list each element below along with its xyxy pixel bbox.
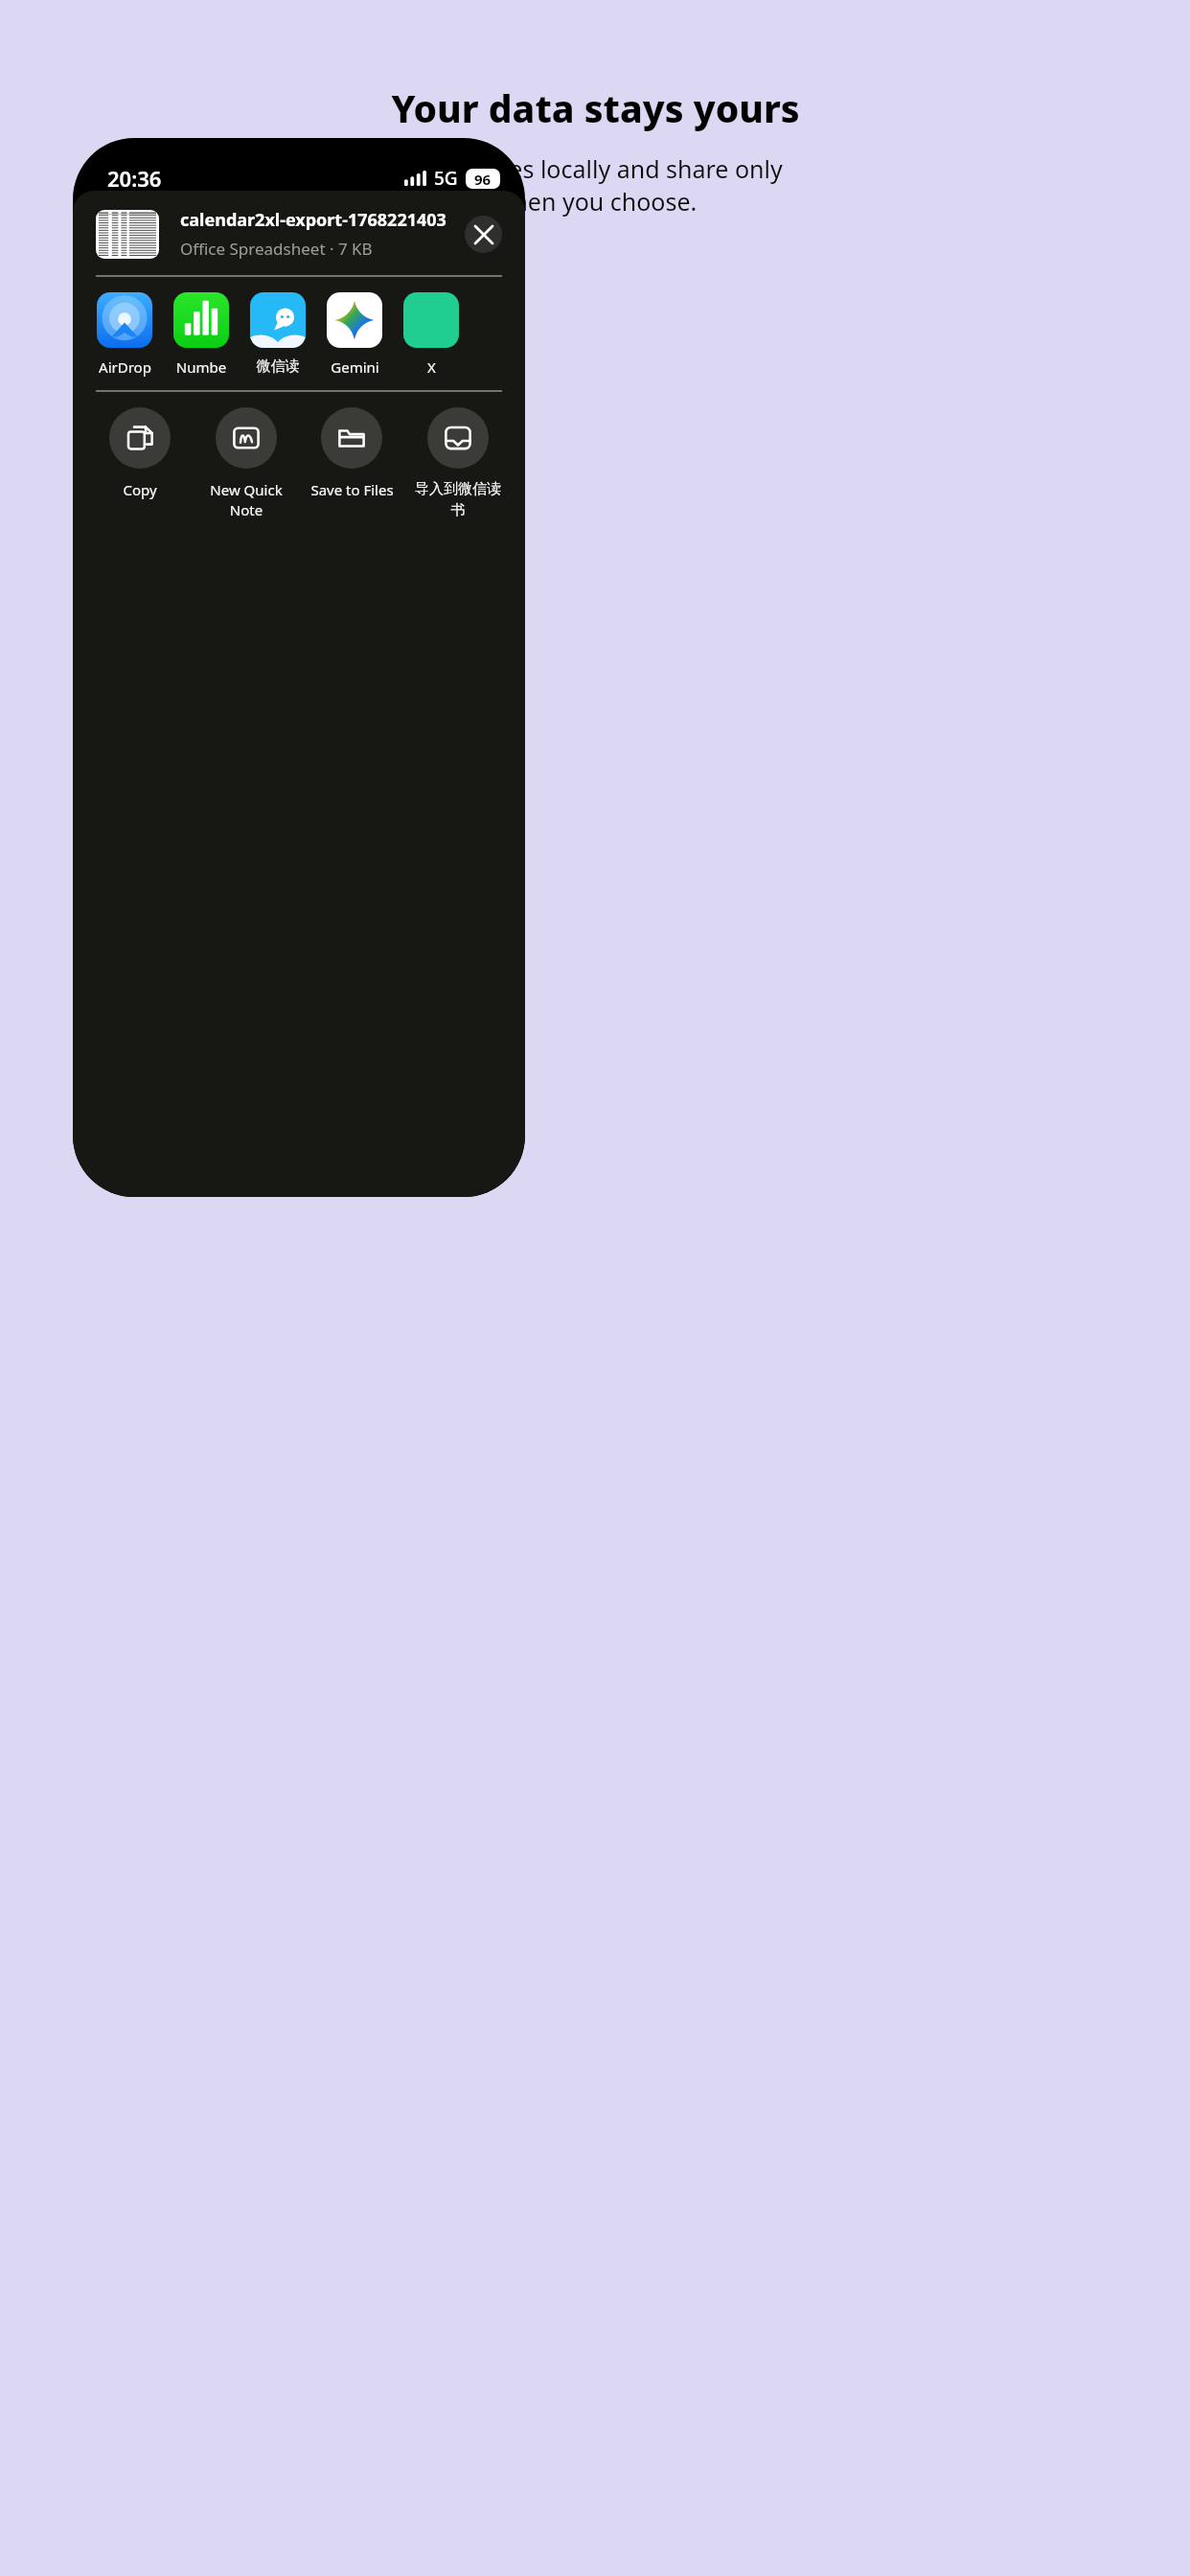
button[interactable]: Copy: [92, 407, 188, 499]
button[interactable]: 微信读书: [250, 292, 306, 376]
button[interactable]: Numbers: [173, 292, 229, 377]
staticText: X: [427, 357, 436, 377]
button[interactable]: X: [403, 292, 459, 377]
staticText: 96: [474, 170, 492, 189]
staticText: Your data stays yours: [391, 82, 800, 133]
staticText: Office Spreadsheet · 7 KB: [180, 238, 373, 260]
staticText: 导入到微信读书: [410, 480, 506, 518]
staticText: Gemini: [331, 357, 379, 377]
staticText: calendar2xl-export-1768221403: [180, 208, 446, 232]
staticText: AirDrop: [99, 357, 151, 377]
button[interactable]: Save to Files: [304, 407, 400, 499]
staticText: 微信读书: [250, 357, 306, 376]
staticText: 5G: [434, 166, 458, 191]
button[interactable]: Close: [465, 216, 502, 253]
staticText: New Quick Note: [210, 480, 283, 520]
staticText: Save to Files: [310, 480, 394, 499]
button[interactable]: Gemini: [327, 292, 382, 377]
staticText: 20:36: [107, 164, 162, 193]
button[interactable]: New Quick Note: [198, 407, 294, 520]
staticText: Export files locally and share only when…: [408, 152, 783, 218]
staticText: Copy: [123, 480, 157, 499]
button[interactable]: AirDrop: [97, 292, 152, 377]
button[interactable]: 导入到微信读书: [410, 407, 506, 518]
staticText: Numbers: [173, 357, 229, 377]
